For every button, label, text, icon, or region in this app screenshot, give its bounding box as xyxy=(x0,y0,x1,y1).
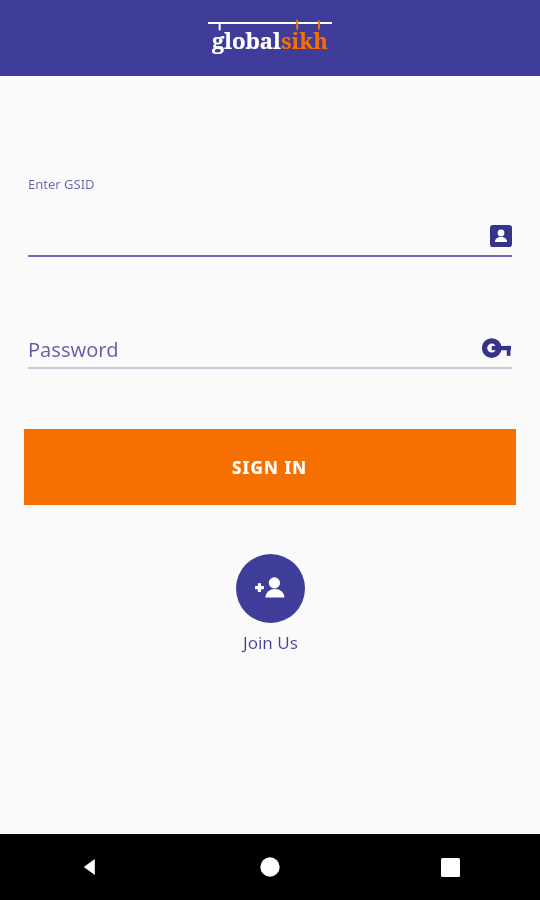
staticText: Password xyxy=(28,336,119,363)
staticText: global xyxy=(212,25,281,55)
button[interactable]: Password xyxy=(28,333,512,365)
other: globalsikh xyxy=(202,19,338,57)
button[interactable]: Recents xyxy=(360,834,540,900)
staticText: Join Us xyxy=(243,631,298,654)
button[interactable]: SIGN IN xyxy=(24,429,516,505)
button[interactable]: Password key xyxy=(486,340,512,358)
button[interactable]: Home xyxy=(180,834,360,900)
staticText: SIGN IN xyxy=(232,456,308,479)
button[interactable]: Join Us xyxy=(236,554,305,623)
staticText: Enter GSID xyxy=(28,175,95,193)
button[interactable]: Back xyxy=(0,834,180,900)
button[interactable]: Account xyxy=(28,219,512,253)
button[interactable]: Account xyxy=(490,225,512,247)
staticText: sikh xyxy=(281,25,329,55)
